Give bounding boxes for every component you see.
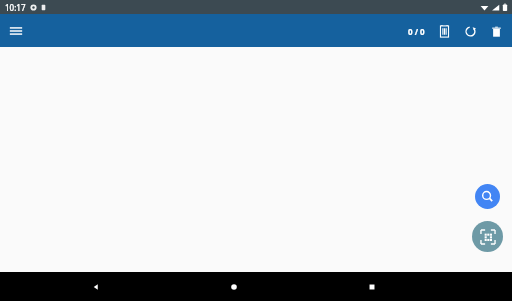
button[interactable]: Back — [78, 272, 114, 301]
button[interactable]: 0 / 0 — [404, 22, 429, 41]
button[interactable]: Home — [216, 272, 252, 301]
button[interactable]: Storage — [432, 19, 456, 43]
staticText: 10:17 — [5, 2, 26, 13]
button[interactable]: Open navigation menu — [5, 20, 27, 42]
button[interactable]: Refresh — [458, 19, 482, 43]
button[interactable]: Recent apps — [354, 272, 390, 301]
button[interactable]: Scan code — [472, 221, 503, 252]
staticText: 0 / 0 — [408, 26, 425, 37]
button[interactable]: Delete — [484, 19, 508, 43]
button[interactable]: Search — [475, 184, 500, 209]
